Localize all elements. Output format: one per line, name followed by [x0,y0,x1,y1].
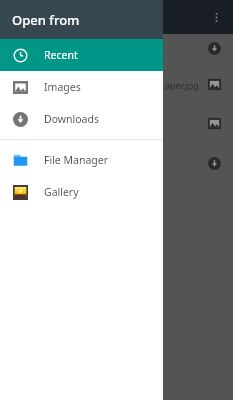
staticText: Images [44,80,81,94]
button[interactable]: More options [204,5,228,29]
button[interactable]: File Manager [0,144,163,176]
staticText: Open from [12,11,80,29]
button[interactable]: Gallery [0,176,163,208]
staticText: Downloads [44,112,99,126]
staticText: Gallery [44,185,79,199]
staticText: File Manager [44,153,109,167]
button[interactable]: Recent [0,39,163,71]
button[interactable]: Images [0,71,163,103]
button[interactable]: Downloads [0,103,163,135]
staticText: aper.jpg [165,79,199,91]
staticText: Recent [44,48,78,62]
